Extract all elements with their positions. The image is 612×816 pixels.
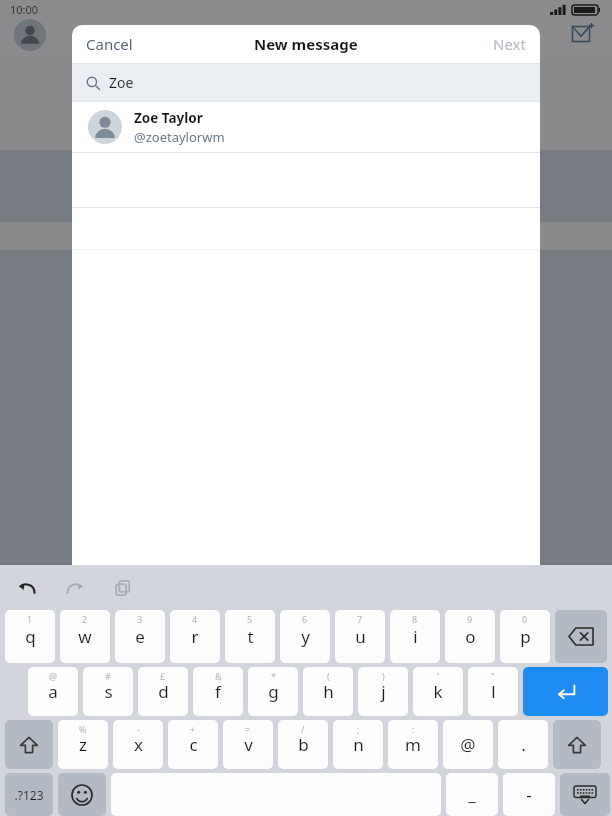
staticText: y	[301, 625, 310, 648]
button[interactable]: kbd	[560, 773, 610, 816]
button[interactable]: .	[498, 720, 548, 769]
button[interactable]: x	[113, 720, 163, 769]
staticText: _	[468, 783, 476, 806]
staticText: e	[135, 625, 145, 648]
staticText: /	[301, 723, 305, 735]
button[interactable]: t	[225, 610, 275, 663]
button[interactable]: @	[443, 720, 493, 769]
button[interactable]: s	[83, 667, 133, 716]
staticText: 10:00	[10, 2, 39, 17]
button[interactable]: b	[278, 720, 328, 769]
staticText: 5	[247, 613, 253, 625]
staticText: 7	[357, 613, 363, 625]
button[interactable]: back	[555, 610, 607, 663]
staticText: j	[381, 680, 386, 703]
staticText: h	[323, 680, 334, 703]
button[interactable]: emoji	[58, 773, 106, 816]
button[interactable]: shift	[5, 720, 53, 769]
staticText: 4	[192, 613, 198, 625]
staticText: Cancel	[86, 34, 133, 54]
staticText: #	[105, 670, 111, 682]
button[interactable]: p	[500, 610, 550, 663]
button[interactable]: q	[5, 610, 55, 663]
button[interactable]: n	[333, 720, 383, 769]
staticText: 2	[82, 613, 88, 625]
button[interactable]: u	[335, 610, 385, 663]
staticText: =	[245, 723, 251, 735]
button[interactable]: Undo	[14, 575, 40, 601]
staticText: c	[189, 733, 198, 756]
staticText: t	[247, 625, 254, 648]
staticText: d	[158, 680, 169, 703]
staticText: :	[412, 723, 415, 735]
staticText: New message	[254, 34, 358, 54]
button[interactable]: a	[28, 667, 78, 716]
staticText: ;	[357, 723, 360, 735]
button[interactable]: .?123	[5, 773, 53, 816]
button[interactable]: j	[358, 667, 408, 716]
staticText: Next	[493, 34, 526, 54]
staticText: 1	[27, 613, 33, 625]
button[interactable]: o	[445, 610, 495, 663]
button[interactable]: Cancel	[76, 25, 143, 63]
button[interactable]: k	[413, 667, 463, 716]
staticText: s	[104, 680, 113, 703]
staticText: .	[521, 733, 526, 756]
staticText: r	[191, 625, 199, 648]
staticText: n	[353, 733, 364, 756]
staticText: "	[491, 670, 495, 682]
staticText: -	[526, 783, 532, 806]
button[interactable]: c	[168, 720, 218, 769]
button[interactable]: l	[468, 667, 518, 716]
staticText: 3	[137, 613, 143, 625]
staticText: x	[134, 733, 143, 756]
button[interactable]: z	[58, 720, 108, 769]
staticText: @	[460, 733, 476, 756]
button[interactable]: f	[193, 667, 243, 716]
staticText: q	[25, 625, 36, 648]
button[interactable]: New message	[566, 17, 600, 51]
staticText: b	[298, 733, 309, 756]
button[interactable]: Clipboard	[110, 575, 136, 601]
button[interactable]: w	[60, 610, 110, 663]
staticText: g	[268, 680, 279, 703]
staticText: %	[79, 723, 87, 735]
staticText: )	[382, 670, 385, 682]
staticText: .?123	[14, 787, 44, 803]
button[interactable]: v	[223, 720, 273, 769]
staticText: m	[405, 733, 421, 756]
button[interactable]: -	[503, 773, 555, 816]
staticText: u	[355, 625, 366, 648]
staticText: f	[215, 680, 221, 703]
staticText: o	[465, 625, 476, 648]
staticText: *	[271, 670, 276, 682]
staticText: Zoe	[109, 73, 134, 92]
staticText: @	[49, 670, 58, 682]
staticText: l	[491, 680, 496, 703]
staticText: (	[327, 670, 330, 682]
button[interactable]: h	[303, 667, 353, 716]
staticText: &	[215, 670, 222, 682]
button[interactable]: d	[138, 667, 188, 716]
button[interactable]: Zoe	[72, 64, 540, 101]
button[interactable]: i	[390, 610, 440, 663]
button[interactable]: _	[446, 773, 498, 816]
staticText: a	[48, 680, 58, 703]
button[interactable]: Zoe Taylor	[72, 102, 540, 152]
staticText: k	[433, 680, 443, 703]
staticText: v	[244, 733, 253, 756]
button[interactable]: e	[115, 610, 165, 663]
button[interactable]: m	[388, 720, 438, 769]
button[interactable]: shift	[553, 720, 601, 769]
button[interactable]: enter	[523, 667, 608, 716]
staticText: Zoe Taylor	[134, 109, 203, 127]
button[interactable]: r	[170, 610, 220, 663]
button[interactable]: y	[280, 610, 330, 663]
staticText: i	[413, 625, 418, 648]
staticText: z	[79, 733, 87, 756]
staticText: @zoetaylorwm	[134, 128, 225, 146]
button[interactable]: g	[248, 667, 298, 716]
button[interactable]: Next	[483, 25, 536, 63]
button[interactable]: Redo	[62, 575, 88, 601]
